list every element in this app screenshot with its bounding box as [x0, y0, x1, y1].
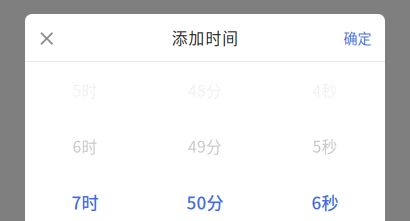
- staticText: 确定: [343, 27, 371, 48]
- button[interactable]: 确定: [330, 14, 385, 61]
- staticText: 50分: [186, 190, 223, 214]
- button[interactable]: 48分: [145, 62, 265, 221]
- button[interactable]: 5时: [25, 62, 145, 221]
- button[interactable]: Close: [25, 14, 68, 61]
- staticText: 5时: [72, 79, 97, 101]
- staticText: 49分: [188, 135, 222, 157]
- staticText: 4秒: [312, 79, 337, 101]
- staticText: 48分: [188, 79, 222, 101]
- staticText: 7时: [71, 190, 98, 214]
- staticText: 6时: [72, 135, 97, 157]
- button[interactable]: 4秒: [265, 62, 385, 221]
- staticText: 添加时间: [172, 26, 238, 49]
- staticText: 5秒: [312, 135, 337, 157]
- staticText: 6秒: [311, 190, 338, 214]
